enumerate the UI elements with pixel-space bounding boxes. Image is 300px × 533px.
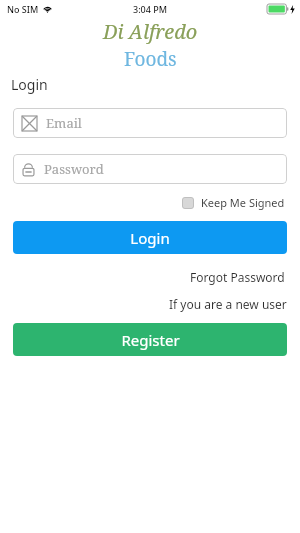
button[interactable]: Email	[13, 108, 287, 138]
staticText: If you are a new user	[169, 296, 287, 312]
staticText: No SIM	[7, 3, 39, 15]
staticText: Password	[44, 160, 104, 178]
staticText: Login	[11, 75, 48, 94]
staticText: Foods	[124, 46, 177, 72]
button[interactable]: Password	[13, 154, 287, 184]
button[interactable]: Login	[13, 221, 287, 254]
button[interactable]: Keep Me Signed	[180, 192, 287, 213]
staticText: Email	[46, 114, 82, 132]
staticText: Login	[130, 228, 170, 248]
staticText: 3:04 PM	[133, 3, 167, 15]
button[interactable]: Register	[13, 323, 287, 356]
staticText: Forgot Password	[190, 269, 285, 285]
staticText: Di Alfredo	[103, 18, 198, 45]
staticText: Register	[121, 330, 180, 350]
staticText: Keep Me Signed	[201, 195, 285, 210]
button[interactable]: Forgot Password	[188, 266, 287, 288]
